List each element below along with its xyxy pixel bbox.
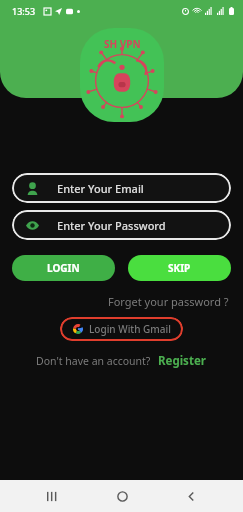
- staticText: Login With Gmail: [89, 322, 171, 336]
- staticText: SH VPN: [104, 37, 141, 51]
- button[interactable]: Enter Your Email: [12, 173, 231, 203]
- button[interactable]: Register: [156, 351, 208, 371]
- button[interactable]: Forget your password ?: [106, 292, 231, 311]
- button[interactable]: Home: [105, 480, 139, 512]
- button[interactable]: Enter Your Password: [12, 210, 231, 240]
- button[interactable]: Login With Gmail: [60, 317, 183, 341]
- button[interactable]: Recent apps: [35, 480, 69, 512]
- button[interactable]: SKIP: [128, 255, 231, 281]
- staticText: Don't have an account?: [36, 354, 151, 368]
- button[interactable]: LOGIN: [12, 255, 115, 281]
- staticText: Enter Your Email: [57, 181, 144, 196]
- staticText: 13:53: [12, 5, 36, 17]
- staticText: LOGIN: [47, 261, 80, 275]
- staticText: SKIP: [168, 261, 191, 275]
- button[interactable]: Back: [174, 480, 208, 512]
- staticText: Enter Your Password: [57, 218, 166, 233]
